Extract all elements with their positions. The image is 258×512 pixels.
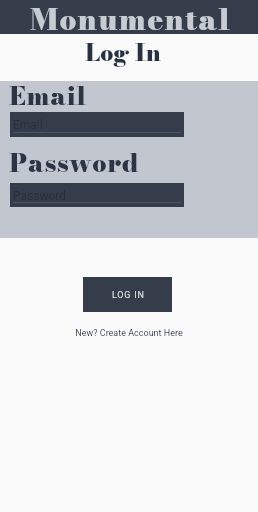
staticText: Email [13,118,43,132]
staticText: Log In [85,35,161,70]
staticText: LOG IN [112,290,145,301]
staticText: Email [9,77,87,115]
button[interactable]: LOG IN [83,277,172,312]
staticText: Monumental [30,0,232,31]
staticText: Password [13,189,67,203]
button[interactable]: Password [10,183,184,207]
staticText: Password [9,144,140,182]
button[interactable]: New? Create Account Here [75,328,183,339]
button[interactable]: Email [10,112,184,137]
